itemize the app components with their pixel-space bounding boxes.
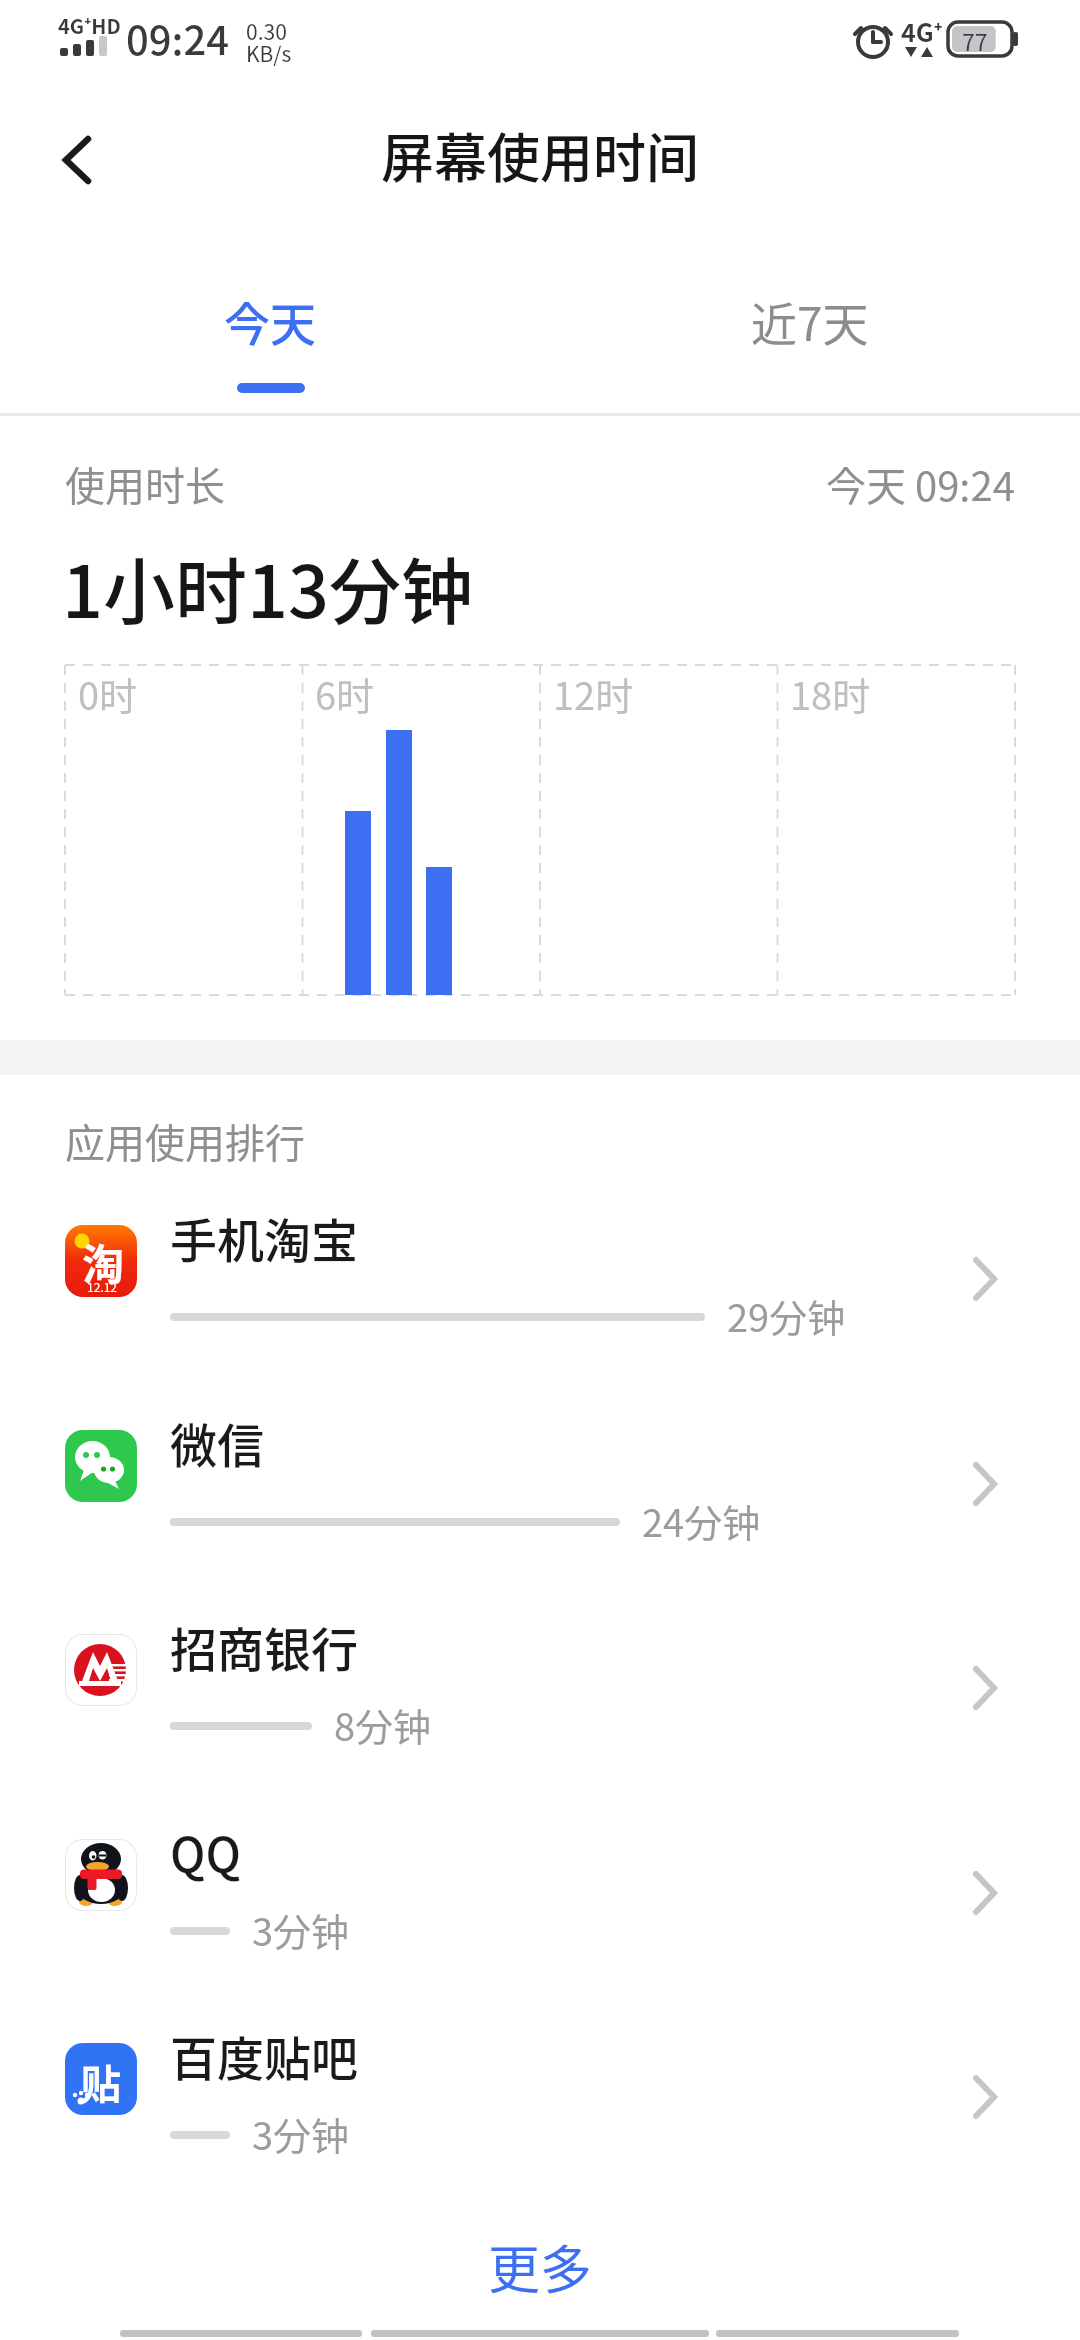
staticText: 应用使用排行	[65, 1112, 305, 1170]
staticText: 百度贴吧	[170, 2021, 358, 2089]
staticText: 淘	[82, 1231, 125, 1292]
staticText: 使用时长	[65, 455, 225, 513]
button[interactable]: 今天	[0, 230, 540, 413]
button[interactable]: 淘	[0, 1187, 1080, 1391]
staticText: 招商银行	[170, 1612, 358, 1680]
staticText: 3分钟	[252, 1902, 350, 1957]
staticText: 微信	[170, 1408, 264, 1476]
button[interactable]: 贴	[0, 2005, 1080, 2209]
staticText: 12时	[553, 666, 634, 721]
staticText: 1小时13分钟	[62, 534, 474, 638]
staticText: KB/s	[246, 38, 292, 68]
button[interactable]: 招商银行	[0, 1596, 1080, 1800]
staticText: 0时	[78, 666, 138, 721]
staticText: 18时	[790, 666, 871, 721]
staticText: 4G⁺HD	[58, 11, 121, 40]
staticText: 77	[962, 24, 988, 57]
button[interactable]: 微信	[0, 1392, 1080, 1596]
button[interactable]: QQ	[0, 1801, 1080, 2005]
staticText: 29分钟	[727, 1288, 846, 1343]
button[interactable]	[716, 2330, 959, 2337]
button[interactable]	[120, 2330, 362, 2337]
staticText: 贴	[81, 2053, 121, 2111]
staticText: 24分钟	[642, 1493, 761, 1548]
button[interactable]	[62, 137, 92, 183]
staticText: 今天	[224, 288, 316, 355]
staticText: 09:24	[126, 9, 230, 67]
staticText: 更多	[488, 2229, 593, 2304]
staticText: 12.12	[87, 1278, 117, 1295]
staticText: 今天 09:24	[826, 455, 1015, 513]
staticText: 4G⁺	[901, 13, 943, 49]
button[interactable]: 近7天	[540, 230, 1080, 413]
staticText: 6时	[315, 666, 375, 721]
staticText: 屏幕使用时间	[0, 117, 1080, 194]
staticText: QQ	[170, 1817, 241, 1885]
staticText: 手机淘宝	[170, 1203, 358, 1271]
staticText: 近7天	[751, 288, 869, 355]
staticText: 8分钟	[334, 1697, 432, 1752]
staticText: 0.30	[246, 16, 287, 46]
button[interactable]: 更多	[488, 2229, 593, 2304]
staticText: 3分钟	[252, 2106, 350, 2161]
